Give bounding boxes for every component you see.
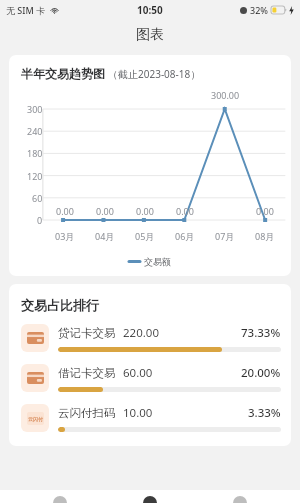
staticText: 半年交易趋势图: [21, 66, 105, 81]
button[interactable]: 首页: [30, 490, 90, 503]
button[interactable]: 贷记卡交易: [9, 324, 291, 352]
staticText: 无 SIM 卡: [6, 4, 46, 16]
staticText: 0.00: [256, 205, 274, 217]
staticText: 120: [27, 170, 43, 182]
staticText: 05月: [135, 230, 155, 242]
button[interactable]: 借记卡交易: [9, 364, 291, 392]
staticText: 180: [27, 147, 43, 159]
staticText: 0.00: [96, 205, 114, 217]
staticText: 32%: [250, 4, 268, 16]
button[interactable]: 交易: [120, 490, 180, 503]
staticText: 10:50: [137, 3, 163, 17]
staticText: 3.33%: [248, 405, 281, 421]
staticText: 贷记卡交易: [58, 326, 116, 340]
staticText: 73.33%: [241, 325, 281, 341]
staticText: 07月: [215, 230, 235, 242]
staticText: 云闪付扫码: [58, 406, 116, 420]
staticText: 0.00: [56, 205, 74, 217]
staticText: 云闪付: [28, 416, 43, 422]
staticText: （截止2023-08-18）: [108, 67, 201, 81]
staticText: 20.00%: [241, 365, 281, 381]
staticText: 60: [32, 192, 43, 204]
staticText: 0.00: [136, 205, 154, 217]
staticText: 240: [27, 125, 43, 137]
staticText: 10.00: [123, 405, 153, 421]
button[interactable]: 我的: [210, 490, 270, 503]
staticText: 0.00: [176, 205, 194, 217]
staticText: 220.00: [123, 325, 159, 341]
staticText: 08月: [255, 230, 275, 242]
staticText: 0: [37, 214, 43, 226]
staticText: 03月: [55, 230, 75, 242]
staticText: 06月: [175, 230, 195, 242]
staticText: 300: [27, 103, 43, 115]
staticText: 交易额: [144, 256, 171, 267]
staticText: 04月: [95, 230, 115, 242]
staticText: 60.00: [123, 365, 153, 381]
button[interactable]: 云闪付: [9, 404, 291, 432]
staticText: 300.00: [211, 89, 240, 101]
staticText: 交易占比排行: [21, 297, 99, 313]
staticText: 借记卡交易: [58, 366, 116, 380]
staticText: 图表: [136, 26, 164, 44]
